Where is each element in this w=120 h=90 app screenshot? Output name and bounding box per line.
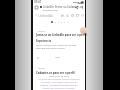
button[interactable]: Search <box>34 12 38 18</box>
staticText: ou entrar, voce aceita o Contrato de <box>35 81 83 84</box>
button[interactable]: Switch tabs <box>34 4 39 11</box>
staticText: 09:41 <box>34 0 42 4</box>
staticText: br.linkedin.com <box>43 9 58 12</box>
button[interactable]: Mais <box>35 55 83 60</box>
staticText: LinkedIn <box>38 13 54 18</box>
button[interactable]: Jobs <box>70 12 75 18</box>
button[interactable]: Notifications <box>80 12 85 18</box>
staticText: Experiencia <box>36 39 51 43</box>
staticText: Politica de Cookies do LinkedIn. <box>35 87 83 90</box>
staticText: Ao clicar em Continuar para se cadastrar <box>35 78 83 81</box>
button[interactable]: Home <box>60 12 65 18</box>
button[interactable]: My network <box>65 12 70 18</box>
staticText: Bem-vindo de volta <box>33 75 85 78</box>
staticText: usuario, a Politica de Privacidade e a <box>35 84 83 87</box>
staticText: empresa que possa crescer. <box>36 47 66 50</box>
staticText: Cadastre-se para ver o perfil completo <box>36 71 88 75</box>
staticText: LinkedIn: Entrar ou Cadastrar-se <box>43 5 83 9</box>
button[interactable]: Messaging <box>75 12 80 18</box>
staticText: Junte-se ao LinkedIn para ver o perfil <box>36 33 87 37</box>
button[interactable]: Share <box>74 4 79 11</box>
button[interactable]: More options <box>80 4 84 11</box>
staticText: Mais <box>55 56 61 59</box>
staticText: Tenho interesse em trabalhar em uma <box>36 44 77 47</box>
